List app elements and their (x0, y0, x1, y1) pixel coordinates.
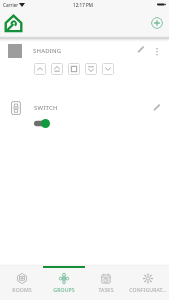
button[interactable]: Open fully (34, 63, 46, 75)
button[interactable]: Add group (151, 17, 163, 29)
staticText: Carrier (3, 2, 19, 8)
staticText: CONFIGURAT... (129, 286, 167, 293)
staticText: ROOMS (12, 286, 32, 293)
button[interactable]: TASKS (85, 266, 127, 300)
button[interactable]: GROUPS (43, 266, 85, 300)
button[interactable]: SWITCH (0, 100, 169, 116)
button[interactable]: Home (4, 14, 23, 33)
staticText: 12:17 PM (73, 2, 93, 8)
staticText: SHADING (33, 47, 62, 55)
button[interactable]: CONFIGURAT... (127, 266, 169, 300)
button[interactable]: ROOMS (0, 266, 43, 300)
staticText: GROUPS (53, 286, 75, 293)
button[interactable]: SHADING (0, 43, 169, 59)
button[interactable]: Close fully (102, 63, 114, 75)
button[interactable]: Switch on (34, 119, 50, 128)
button[interactable]: Edit (135, 43, 147, 55)
button[interactable]: More options (152, 47, 162, 57)
staticText: SWITCH (34, 104, 58, 112)
button[interactable]: Edit (151, 101, 163, 113)
button[interactable]: Stop (68, 63, 80, 75)
staticText: TASKS (98, 286, 114, 293)
button[interactable]: Open (51, 63, 63, 75)
button[interactable]: Close (85, 63, 97, 75)
